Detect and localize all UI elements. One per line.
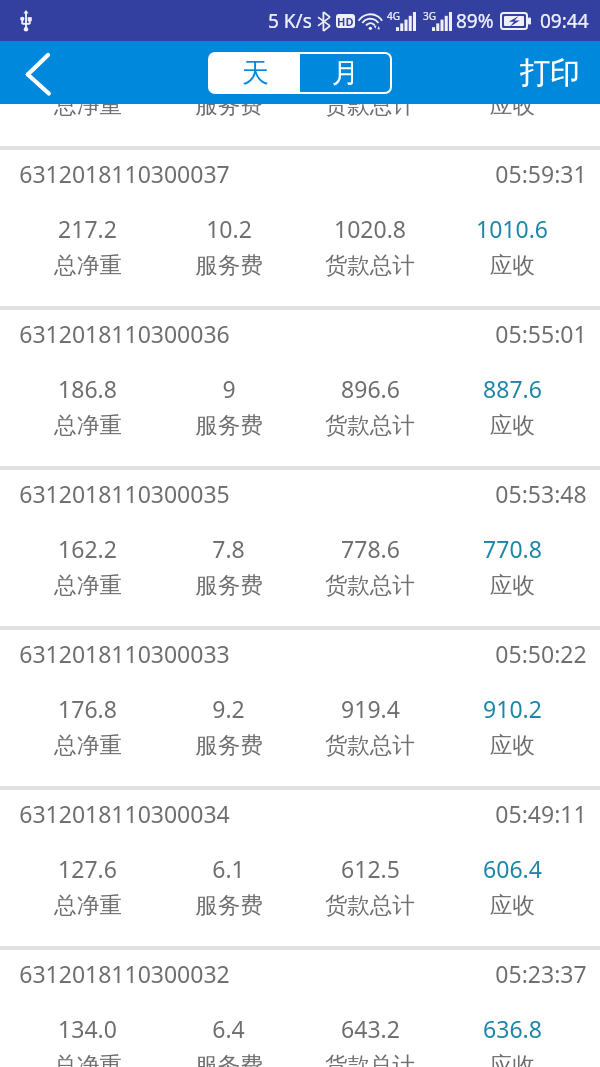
staticText: 05:49:11 [495,798,587,829]
staticText: 05:50:22 [495,638,587,669]
staticText: 7.8 [212,533,245,564]
staticText: 643.2 [341,1013,400,1044]
staticText: 总净重 [54,411,122,439]
staticText: 应收 [490,1051,535,1067]
button[interactable]: 月 [300,54,390,92]
staticText: 总净重 [54,731,122,759]
staticText: 636.8 [483,1013,542,1044]
staticText: 服务费 [195,104,263,119]
staticText: 应收 [490,104,535,119]
staticText: 186.8 [58,373,117,404]
staticText: 89% [456,8,494,34]
staticText: 612.5 [341,853,400,884]
staticText: 778.6 [341,533,400,564]
staticText: 月 [332,56,359,90]
staticText: 货款总计 [325,104,415,119]
staticText: 应收 [490,731,535,759]
staticText: 货款总计 [325,411,415,439]
staticText: 9 [222,373,236,404]
staticText: 服务费 [195,571,263,599]
staticText: 09:44 [540,8,589,34]
button[interactable]: 6312018110300032 [0,950,600,1067]
staticText: 服务费 [195,891,263,919]
staticText: 总净重 [54,104,122,119]
staticText: 919.4 [341,693,400,724]
staticText: 总净重 [54,891,122,919]
staticText: 887.6 [483,373,542,404]
button[interactable]: 6312018110300034 [0,790,600,946]
staticText: 896.6 [341,373,400,404]
button[interactable]: 天 [210,54,300,92]
button[interactable]: 6312018110300033 [0,630,600,786]
button[interactable]: 6312018110300032 [0,104,600,146]
staticText: 5 K/s [268,8,312,34]
staticText: 127.6 [58,853,117,884]
staticText: 应收 [490,571,535,599]
staticText: 6.4 [212,1013,245,1044]
staticText: 162.2 [58,533,117,564]
staticText: 05:55:01 [495,318,587,349]
staticText: 176.8 [58,693,117,724]
button[interactable]: 6312018110300037 [0,150,600,306]
button[interactable]: 6312018110300036 [0,310,600,466]
staticText: 服务费 [195,731,263,759]
staticText: 总净重 [54,251,122,279]
staticText: 05:53:48 [495,478,587,509]
button[interactable]: Back [0,41,76,104]
staticText: 3G [423,9,436,23]
staticText: 总净重 [54,1051,122,1067]
staticText: 6312018110300035 [19,478,230,509]
staticText: 05:59:31 [495,158,587,189]
staticText: 服务费 [195,1051,263,1067]
staticText: 6312018110300033 [19,638,230,669]
staticText: 6312018110300037 [19,158,230,189]
staticText: 134.0 [58,1013,117,1044]
staticText: 应收 [490,891,535,919]
staticText: 应收 [490,411,535,439]
staticText: 6312018110300032 [19,958,230,989]
staticText: 打印 [520,54,580,92]
staticText: 总净重 [54,571,122,599]
button[interactable]: 打印 [498,41,600,104]
staticText: 服务费 [195,251,263,279]
staticText: 6312018110300036 [19,318,230,349]
staticText: 1010.6 [476,213,548,244]
staticText: 10.2 [206,213,252,244]
staticText: 6312018110300034 [19,798,230,829]
staticText: 606.4 [483,853,542,884]
staticText: 货款总计 [325,1051,415,1067]
staticText: 货款总计 [325,571,415,599]
staticText: 服务费 [195,411,263,439]
staticText: 货款总计 [325,731,415,759]
staticText: 货款总计 [325,891,415,919]
staticText: 6.1 [212,853,245,884]
staticText: 4G [387,9,400,23]
staticText: 770.8 [483,533,542,564]
staticText: 天 [242,56,269,90]
staticText: 217.2 [58,213,117,244]
staticText: 应收 [490,251,535,279]
staticText: 货款总计 [325,251,415,279]
staticText: 05:23:37 [495,958,587,989]
button[interactable]: 6312018110300035 [0,470,600,626]
staticText: 9.2 [212,693,245,724]
staticText: HD [337,14,354,28]
staticText: 910.2 [483,693,542,724]
staticText: 1020.8 [334,213,406,244]
